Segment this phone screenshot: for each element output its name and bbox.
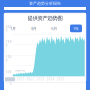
staticText: 3月 bbox=[31, 26, 37, 31]
button[interactable]: 1月 bbox=[8, 25, 18, 32]
staticText: 500 bbox=[6, 70, 12, 74]
staticText: 6月 bbox=[51, 26, 57, 31]
staticText: 2000 bbox=[6, 25, 12, 32]
staticText: 提供资产趋势图 bbox=[27, 15, 62, 22]
staticText: 1500 bbox=[6, 40, 12, 47]
staticText: 2021 2022 2023 2024 2025 bbox=[16, 77, 64, 81]
staticText: 1年 bbox=[73, 26, 79, 31]
staticText: 资产趋势分析报告 bbox=[29, 1, 61, 6]
button[interactable]: 6月 bbox=[49, 25, 59, 32]
button[interactable]: 1年 bbox=[70, 25, 82, 32]
staticText: 1月 bbox=[10, 26, 16, 31]
staticText: 2023-07 1,432 bbox=[15, 70, 25, 72]
button[interactable]: 3月 bbox=[29, 25, 39, 32]
staticText: 1000 bbox=[6, 55, 12, 62]
staticText: 0 bbox=[10, 82, 12, 85]
button[interactable]: 资产趋势分析报告 bbox=[4, 0, 86, 7]
